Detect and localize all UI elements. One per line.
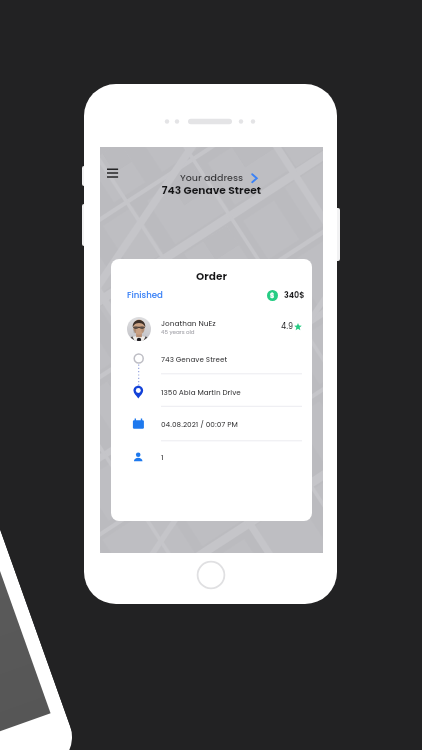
staticText: Order bbox=[111, 269, 312, 284]
staticText: Jonathan NuEz bbox=[161, 318, 216, 328]
button[interactable]: Finished bbox=[127, 289, 163, 301]
staticText: Your address bbox=[100, 171, 323, 184]
staticText: $ bbox=[270, 291, 275, 300]
staticText: 4.9 bbox=[281, 321, 294, 332]
staticText: 45 years old bbox=[161, 328, 195, 336]
button[interactable]: Menu bbox=[106, 166, 123, 179]
staticText: 743 Genave Street bbox=[161, 354, 228, 364]
staticText: 1350 Abia Martin Drive bbox=[161, 387, 241, 397]
staticText: 340$ bbox=[284, 290, 305, 301]
staticText: 1 bbox=[161, 452, 164, 462]
staticText: 743 Genave Street bbox=[100, 183, 323, 198]
staticText: 04.08.2021 / 00:07 PM bbox=[161, 419, 238, 429]
